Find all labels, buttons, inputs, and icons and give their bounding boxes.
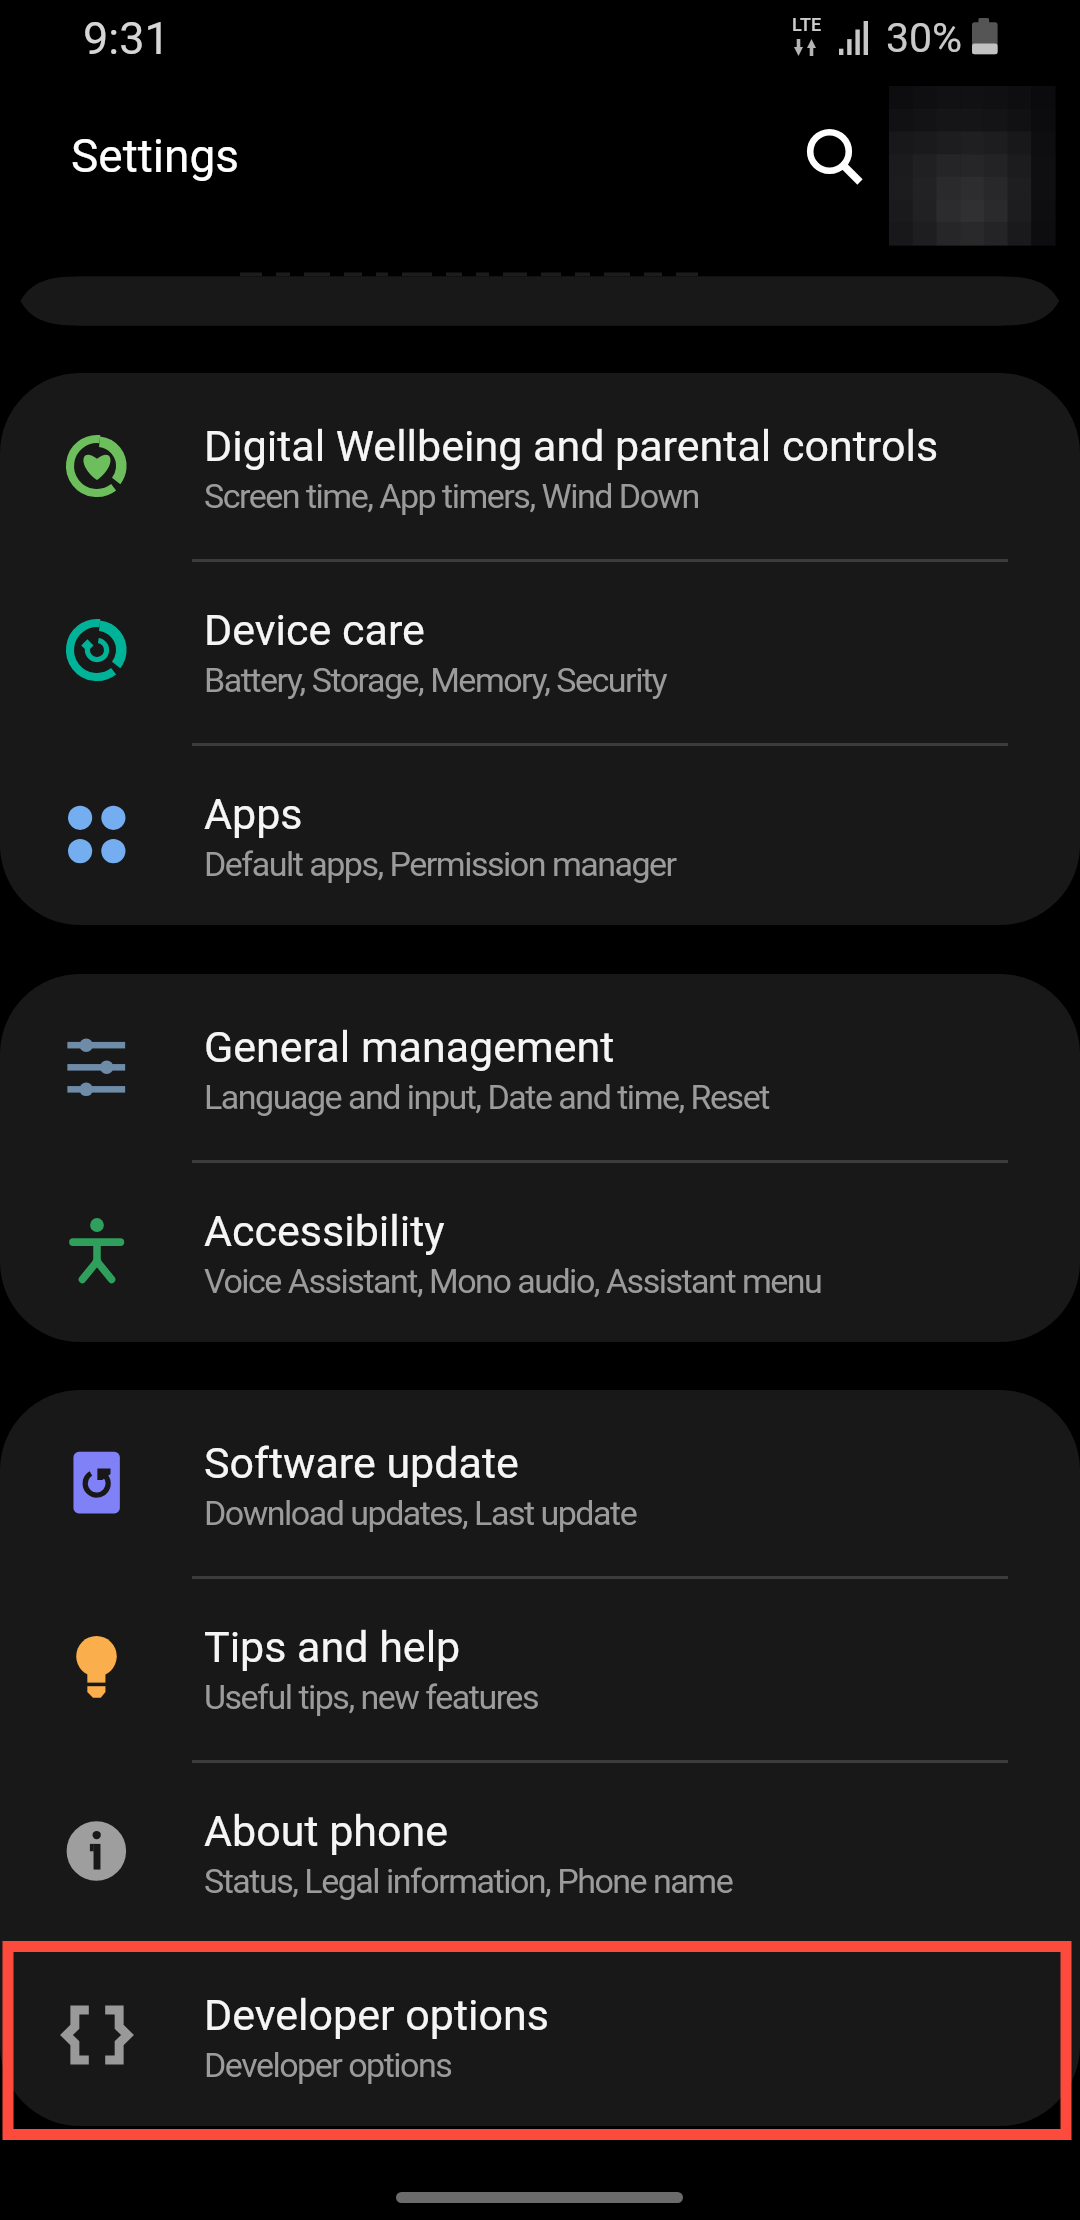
staticText: Device care	[204, 605, 425, 655]
staticText: Status, Legal information, Phone name	[204, 1861, 733, 1901]
button[interactable]: Tips and help	[0, 1574, 1080, 1758]
staticText: Accessibility	[204, 1206, 445, 1256]
staticText: About phone	[204, 1806, 449, 1856]
button[interactable]: About phone	[0, 1758, 1080, 1942]
staticText: Useful tips, new features	[204, 1677, 538, 1717]
button[interactable]: Apps	[0, 741, 1080, 925]
button[interactable]: Search	[782, 104, 878, 200]
staticText: 30%	[886, 14, 963, 62]
staticText: Settings	[71, 129, 239, 183]
button[interactable]: Accessibility	[0, 1158, 1080, 1342]
button[interactable]: Account	[889, 86, 1055, 245]
staticText: 9:31	[83, 12, 170, 65]
button[interactable]: General management	[0, 974, 1080, 1158]
staticText: Tips and help	[204, 1622, 461, 1672]
button[interactable]: Digital Wellbeing and parental controls	[0, 373, 1080, 557]
button[interactable]: Developer options	[0, 1942, 1080, 2126]
staticText: Default apps, Permission manager	[204, 844, 676, 884]
staticText: Download updates, Last update	[204, 1493, 637, 1533]
button[interactable]: Device care	[0, 557, 1080, 741]
staticText: Developer options	[204, 2045, 452, 2085]
staticText: Language and input, Date and time, Reset	[204, 1077, 769, 1117]
staticText: Apps	[204, 789, 303, 839]
staticText: Digital Wellbeing and parental controls	[204, 421, 939, 471]
staticText: Software update	[204, 1438, 519, 1488]
staticText: Screen time, App timers, Wind Down	[204, 476, 699, 516]
staticText: Battery, Storage, Memory, Security	[204, 660, 667, 700]
staticText: Developer options	[204, 1990, 549, 2040]
staticText: LTE	[792, 14, 822, 35]
button[interactable]: Software update	[0, 1390, 1080, 1574]
staticText: Voice Assistant, Mono audio, Assistant m…	[204, 1261, 822, 1301]
staticText: General management	[204, 1022, 615, 1072]
